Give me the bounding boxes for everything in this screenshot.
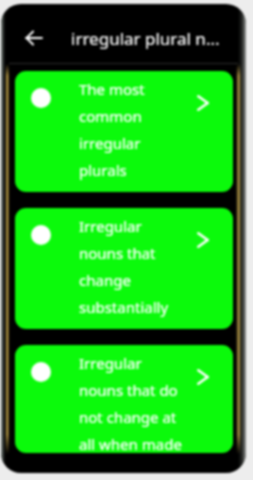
button[interactable]: Irregular nouns that change substantiall… (15, 208, 233, 329)
staticText: irregular plural n... (71, 27, 220, 50)
button[interactable]: Navigate back (13, 17, 55, 59)
button[interactable]: irregular plural n... (71, 27, 220, 50)
button[interactable]: The most common irregular plurals (15, 71, 233, 192)
button[interactable]: Irregular nouns that do not change at al… (15, 345, 233, 453)
staticText: The most common irregular plurals (79, 79, 145, 181)
staticText: Irregular nouns that do not change at al… (79, 353, 182, 453)
staticText: Irregular nouns that change substantiall… (79, 216, 169, 318)
